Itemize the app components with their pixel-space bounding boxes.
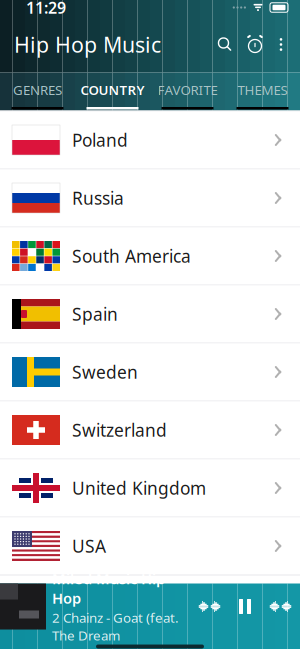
button[interactable]: Switzerland bbox=[0, 401, 300, 459]
staticText: COUNTRY bbox=[80, 81, 144, 99]
staticText: FAVORITE bbox=[157, 81, 217, 99]
button[interactable]: Poland bbox=[0, 111, 300, 169]
button[interactable]: FAVORITE bbox=[150, 72, 225, 110]
button[interactable]: Search bbox=[216, 35, 234, 53]
staticText: United Kingdom bbox=[72, 476, 206, 499]
button[interactable]: South America bbox=[0, 227, 300, 285]
staticText: 11:29 bbox=[26, 0, 66, 18]
staticText: GENRES bbox=[13, 81, 62, 99]
button[interactable]: Russia bbox=[0, 169, 300, 227]
staticText: USA bbox=[72, 534, 106, 557]
button[interactable]: Sweden bbox=[0, 343, 300, 401]
staticText: Hip Hop Music bbox=[14, 30, 161, 59]
staticText: Sweden bbox=[72, 360, 138, 383]
staticText: Russia bbox=[72, 186, 124, 209]
button[interactable]: THEMES bbox=[225, 72, 300, 110]
staticText: Spain bbox=[72, 302, 118, 325]
staticText: Switzerland bbox=[72, 418, 167, 441]
staticText: 2 Chainz - Goat (feat. The Dream bbox=[52, 609, 179, 644]
button[interactable]: Pause bbox=[239, 599, 251, 614]
button[interactable]: GENRES bbox=[0, 72, 75, 110]
button[interactable]: Next bbox=[265, 601, 288, 612]
button[interactable]: Spain bbox=[0, 285, 300, 343]
button[interactable]: More options bbox=[272, 35, 290, 53]
button[interactable]: COUNTRY bbox=[75, 72, 150, 110]
button[interactable]: Previous bbox=[202, 601, 225, 612]
staticText: Poland bbox=[72, 128, 128, 151]
staticText: South America bbox=[72, 244, 191, 267]
staticText: THEMES bbox=[237, 81, 287, 99]
button[interactable]: Sleep timer bbox=[246, 35, 264, 53]
button[interactable]: USA bbox=[0, 517, 300, 575]
button[interactable]: United Kingdom bbox=[0, 459, 300, 517]
staticText: Miled Music Hip-Hop bbox=[52, 569, 170, 608]
